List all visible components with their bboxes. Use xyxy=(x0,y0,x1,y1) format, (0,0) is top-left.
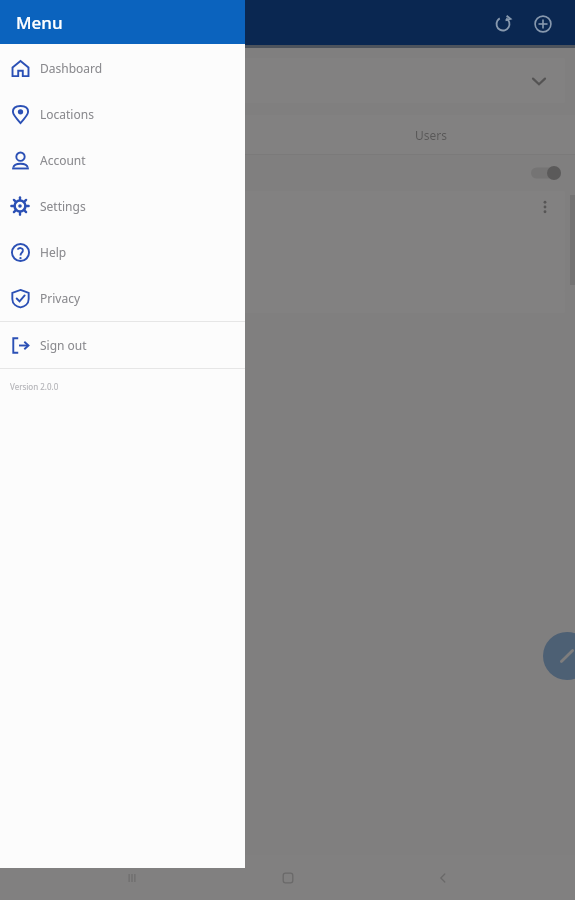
button[interactable]: Account xyxy=(0,137,245,183)
button[interactable]: Settings xyxy=(0,183,245,229)
staticText: Version 2.0.0 xyxy=(10,381,59,392)
staticText: Privacy xyxy=(40,290,81,306)
staticText: Menu xyxy=(16,11,63,34)
button[interactable]: Locations xyxy=(0,91,245,137)
staticText: Settings xyxy=(40,198,86,214)
button[interactable] xyxy=(10,58,565,103)
button[interactable]: Recents xyxy=(108,855,156,900)
button[interactable]: Dashboard xyxy=(0,45,245,91)
button[interactable]: Refresh xyxy=(483,4,523,44)
button[interactable]: More options xyxy=(533,195,557,219)
button[interactable]: Privacy xyxy=(0,275,245,321)
staticText: Account xyxy=(40,152,86,168)
staticText: Help xyxy=(40,244,67,260)
staticText: Locations xyxy=(40,106,94,122)
button[interactable]: Home xyxy=(10,191,565,291)
button[interactable]: Devices xyxy=(0,115,287,155)
button[interactable]: Help xyxy=(0,229,245,275)
button[interactable]: Sign out xyxy=(0,322,245,368)
button[interactable]: Toggle xyxy=(531,166,561,180)
staticText: Home xyxy=(16,232,56,251)
staticText: Users xyxy=(415,127,447,143)
staticText: Dashboard xyxy=(40,60,103,76)
button[interactable]: Edit xyxy=(543,632,575,680)
staticText: Sign out xyxy=(40,337,87,353)
button[interactable]: Add xyxy=(523,4,563,44)
